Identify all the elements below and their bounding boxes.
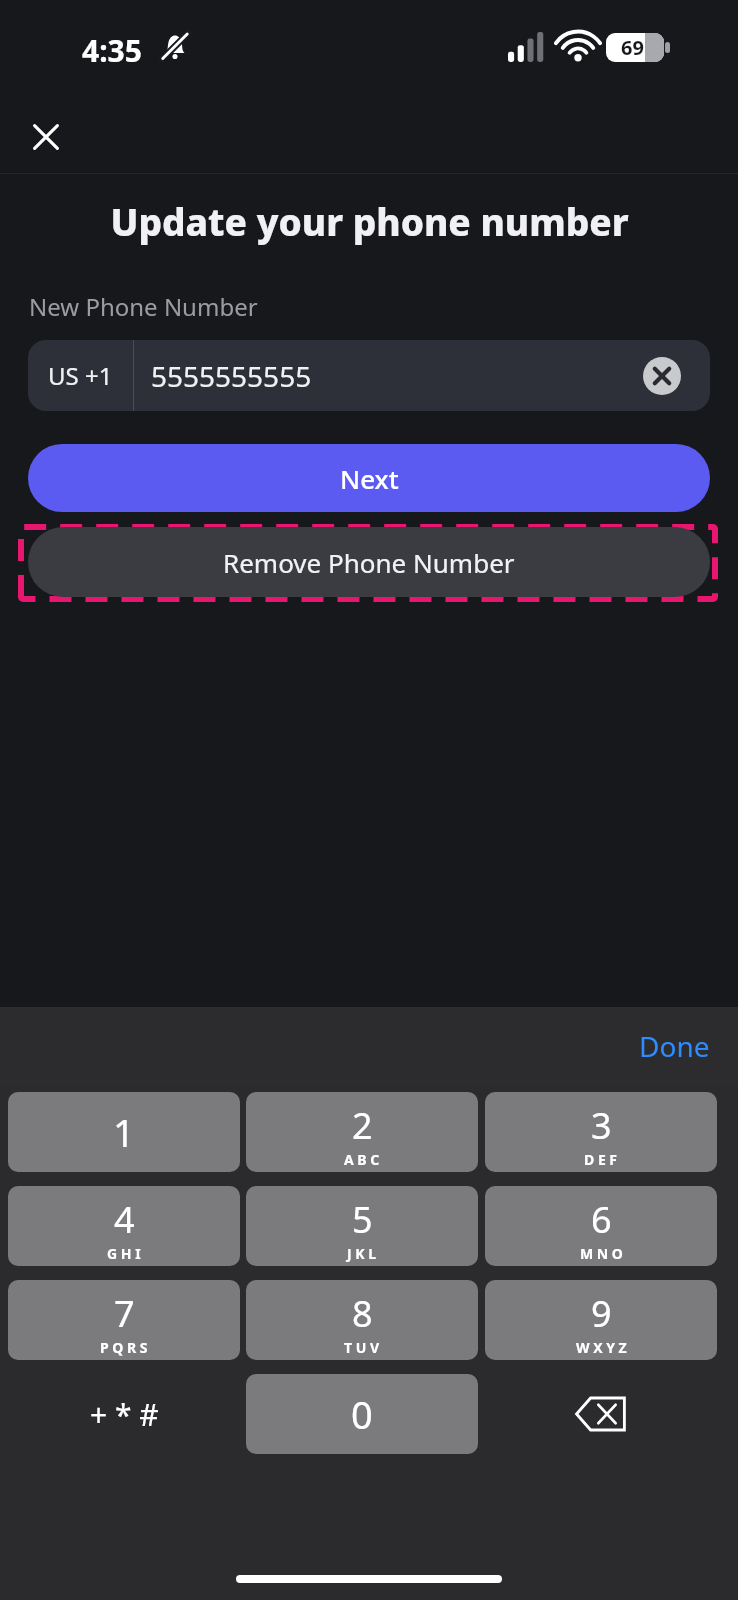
- staticText: J K L: [347, 1244, 377, 1263]
- button[interactable]: Next: [28, 444, 710, 512]
- staticText: M N O: [580, 1244, 623, 1263]
- button[interactable]: US +1: [28, 340, 133, 411]
- staticText: 2: [352, 1101, 373, 1150]
- staticText: Remove Phone Number: [223, 545, 515, 580]
- staticText: G H I: [107, 1244, 141, 1263]
- staticText: 1: [113, 1106, 135, 1158]
- staticText: 4:35: [82, 30, 142, 71]
- button[interactable]: 9: [485, 1280, 717, 1360]
- staticText: 69: [621, 34, 644, 61]
- staticText: 5555555555: [151, 357, 312, 395]
- button[interactable]: 8: [246, 1280, 478, 1360]
- button[interactable]: 6: [485, 1186, 717, 1266]
- staticText: Next: [340, 461, 399, 496]
- staticText: 4: [114, 1195, 135, 1244]
- staticText: W X Y Z: [576, 1338, 627, 1357]
- staticText: 0: [351, 1388, 373, 1440]
- staticText: 5: [352, 1195, 373, 1244]
- button[interactable]: 7: [8, 1280, 240, 1360]
- button[interactable]: Symbols: [8, 1374, 240, 1454]
- button[interactable]: 4: [8, 1186, 240, 1266]
- button[interactable]: 3: [485, 1092, 717, 1172]
- staticText: 8: [352, 1289, 373, 1338]
- staticText: P Q R S: [100, 1338, 148, 1357]
- staticText: A B C: [344, 1150, 380, 1169]
- staticText: 9: [591, 1289, 612, 1338]
- button[interactable]: Clear text: [640, 354, 684, 398]
- button[interactable]: 2: [246, 1092, 478, 1172]
- staticText: Update your phone number: [110, 196, 629, 246]
- staticText: T U V: [344, 1338, 380, 1357]
- staticText: Done: [639, 1027, 710, 1065]
- staticText: + * #: [90, 1394, 159, 1435]
- button[interactable]: Done: [639, 1027, 710, 1065]
- staticText: 7: [114, 1289, 135, 1338]
- staticText: US +1: [48, 359, 113, 392]
- button[interactable]: Backspace: [485, 1374, 717, 1454]
- staticText: New Phone Number: [29, 290, 258, 323]
- button[interactable]: 0: [246, 1374, 478, 1454]
- button[interactable]: 1: [8, 1092, 240, 1172]
- staticText: D E F: [584, 1150, 618, 1169]
- button[interactable]: 5: [246, 1186, 478, 1266]
- staticText: 3: [591, 1101, 612, 1150]
- staticText: 6: [591, 1195, 612, 1244]
- button[interactable]: Remove Phone Number: [28, 527, 710, 597]
- button[interactable]: Close: [18, 109, 74, 165]
